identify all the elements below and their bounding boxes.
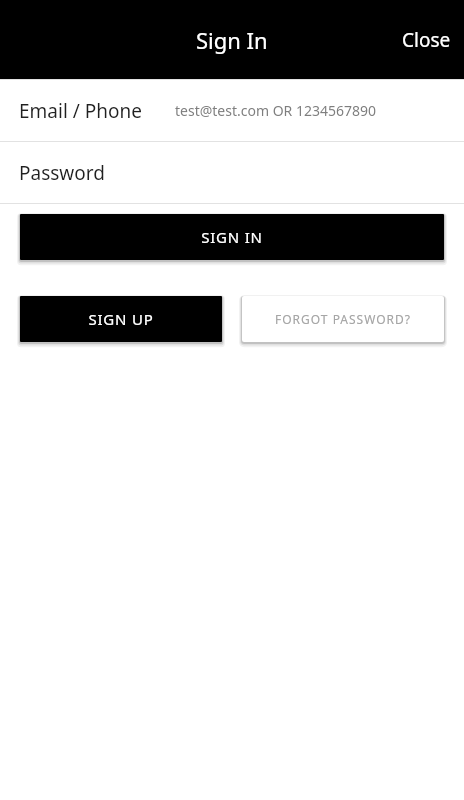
button[interactable]: Close — [389, 15, 464, 65]
staticText: test@test.com OR 1234567890 — [175, 101, 377, 120]
button[interactable]: Password — [0, 142, 464, 203]
staticText: Sign In — [196, 25, 268, 55]
staticText: FORGOT PASSWORD? — [275, 311, 411, 327]
button[interactable]: Email / Phone — [0, 80, 464, 141]
staticText: Email / Phone — [19, 98, 142, 124]
button[interactable]: SIGN UP — [20, 296, 222, 342]
staticText: SIGN IN — [201, 227, 263, 247]
button[interactable]: SIGN IN — [20, 214, 444, 260]
staticText: Password — [19, 160, 105, 186]
button[interactable]: FORGOT PASSWORD? — [242, 296, 444, 342]
staticText: Close — [402, 27, 451, 53]
staticText: SIGN UP — [88, 309, 154, 329]
